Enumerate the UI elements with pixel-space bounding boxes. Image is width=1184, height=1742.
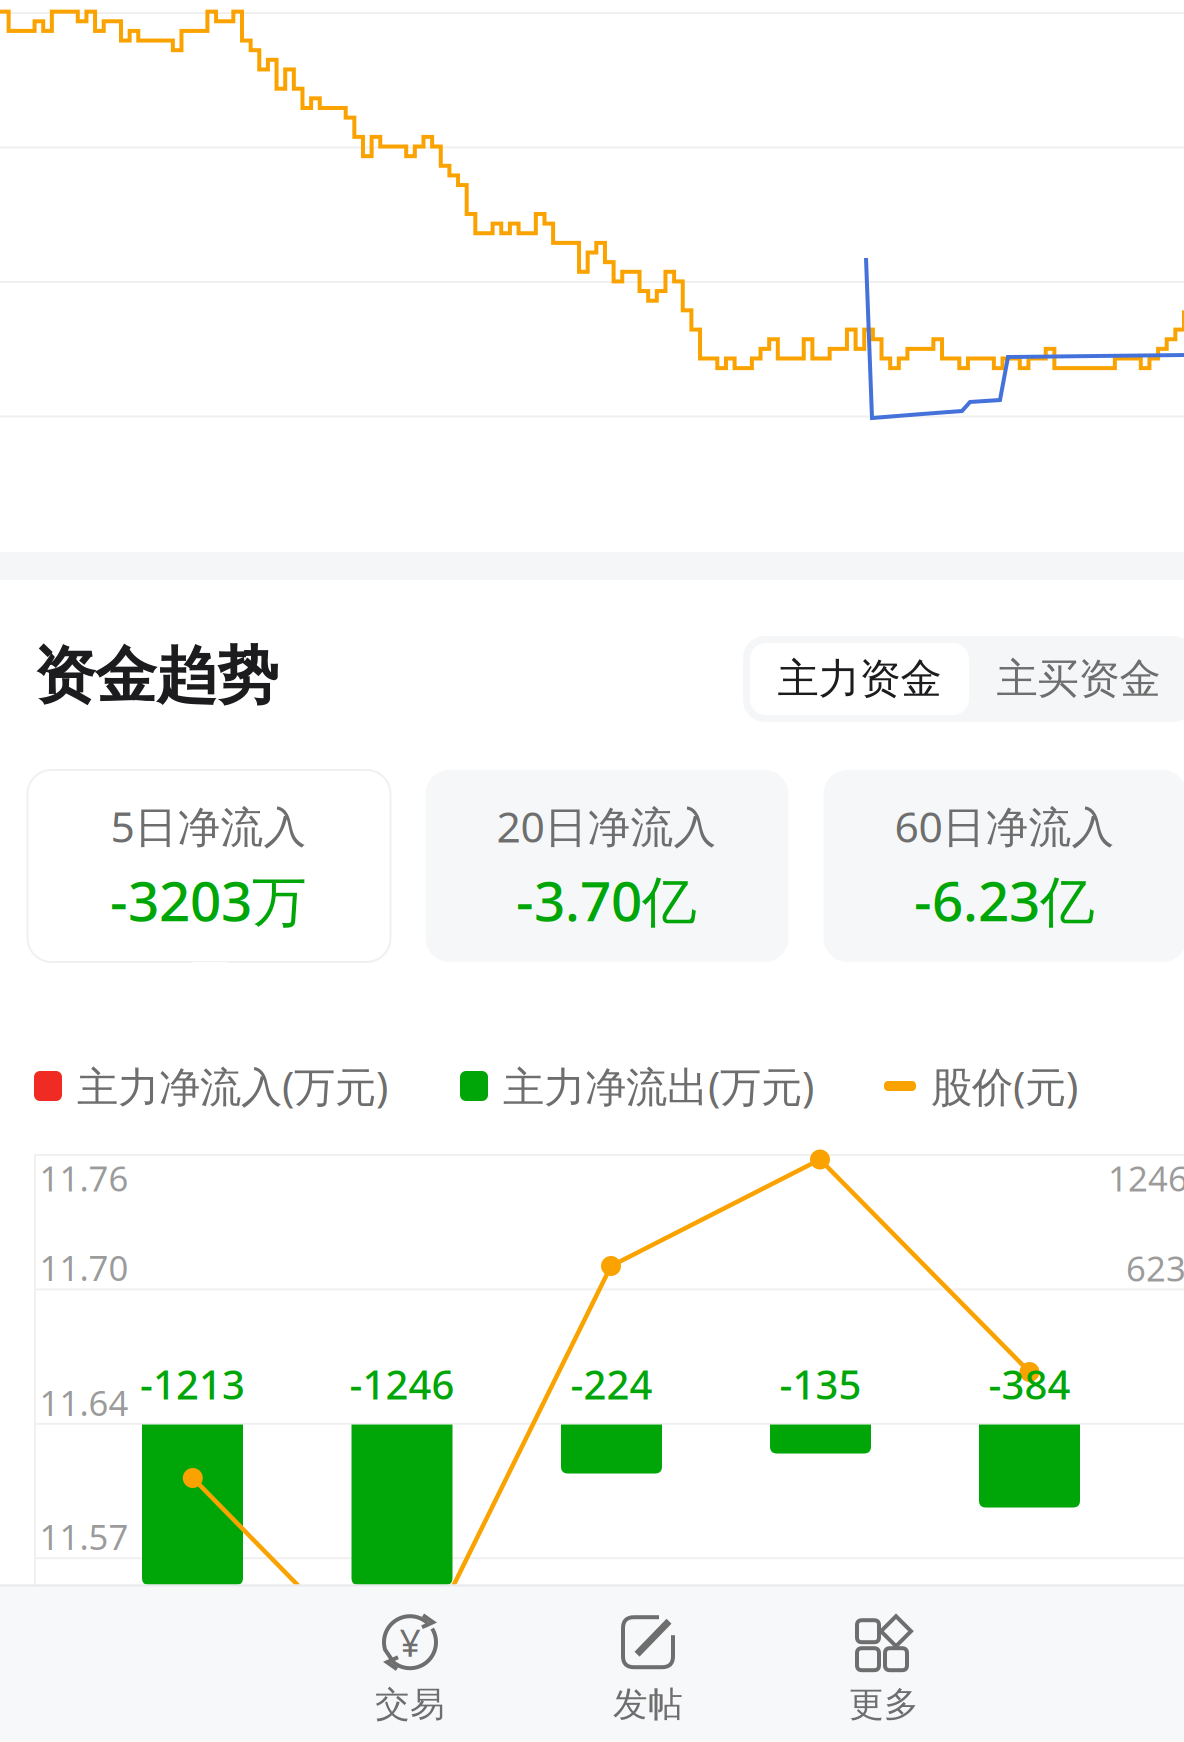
button[interactable]: 5日净流入 <box>27 770 390 962</box>
staticText: 主力净流出(万元) <box>503 1059 814 1113</box>
staticText: 11.76 <box>39 1155 128 1201</box>
staticText: 交易 <box>375 1683 445 1726</box>
staticText: ¥ <box>399 1617 420 1667</box>
staticText: 主力净流入(万元) <box>77 1059 388 1113</box>
staticText: 1246 <box>1108 1155 1184 1201</box>
staticText: -6.23亿 <box>914 864 1095 936</box>
staticText: 更多 <box>849 1683 919 1726</box>
button[interactable]: 60日净流入 <box>823 770 1184 962</box>
button[interactable]: 20日净流入 <box>425 770 788 962</box>
button[interactable]: 主买资金 <box>969 643 1184 715</box>
staticText: 20日净流入 <box>496 798 716 854</box>
staticText: 资金趋势 <box>34 638 278 714</box>
button[interactable]: 发帖 <box>529 1590 766 1742</box>
staticText: 股价(元) <box>931 1059 1078 1113</box>
staticText: 60日净流入 <box>894 798 1114 854</box>
staticText: -3203万 <box>110 864 307 936</box>
staticText: 主买资金 <box>996 654 1160 704</box>
staticText: -384 <box>988 1357 1070 1410</box>
staticText: 发帖 <box>613 1683 683 1726</box>
staticText: 5日净流入 <box>110 798 306 854</box>
staticText: 11.64 <box>39 1380 128 1426</box>
staticText: 11.70 <box>39 1245 128 1291</box>
staticText: -1246 <box>349 1357 454 1410</box>
button[interactable]: ¥ <box>291 1590 528 1742</box>
staticText: -224 <box>570 1357 652 1410</box>
button[interactable]: 主力资金 <box>750 643 969 715</box>
staticText: -1213 <box>140 1357 245 1410</box>
button[interactable]: More <box>765 1590 1002 1742</box>
staticText: -135 <box>779 1357 861 1410</box>
staticText: 主力资金 <box>777 654 941 704</box>
staticText: -3.70亿 <box>516 864 697 936</box>
staticText: 623 <box>1126 1245 1184 1291</box>
staticText: 11.57 <box>39 1514 128 1560</box>
